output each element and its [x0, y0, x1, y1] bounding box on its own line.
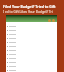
staticText: Filed Your Budget? Tried to Gift — [3, 4, 56, 9]
staticText: I ed to Gift Likes Your Budget? Tri — [3, 10, 53, 14]
